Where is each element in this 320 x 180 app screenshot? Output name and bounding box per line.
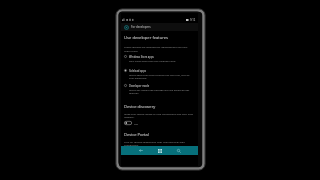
staticText: These settings are intended for developm… <box>124 45 196 48</box>
staticText: Device discovery <box>124 104 156 110</box>
button[interactable]: Search <box>169 146 188 155</box>
staticText: Off <box>134 122 138 125</box>
staticText: Use developer features <box>124 35 168 41</box>
button[interactable]: Start <box>150 146 169 155</box>
staticText: Install any signed app package and use a… <box>129 88 190 94</box>
staticText: For developers <box>131 25 151 29</box>
staticText: 9:12 <box>190 18 196 22</box>
staticText: Turn on remote diagnostics over USB and … <box>124 140 196 146</box>
button[interactable]: Developer mode <box>124 84 199 94</box>
staticText: Device Portal <box>124 132 149 138</box>
button[interactable]: Learn more <box>124 49 138 52</box>
staticText: Developer mode <box>129 84 150 88</box>
button[interactable]: Back <box>131 146 150 155</box>
button[interactable]: For developers <box>121 23 198 31</box>
button[interactable]: Sideload apps <box>124 69 199 79</box>
staticText: Make your device visible to USB connecti… <box>124 112 196 118</box>
button[interactable]: Off <box>124 121 138 125</box>
staticText: Windows Store apps <box>129 55 154 59</box>
staticText: Sideload apps <box>129 69 147 73</box>
staticText: Only install apps from the Windows Store… <box>129 59 176 62</box>
staticText: Install apps from other sources that you… <box>129 73 190 79</box>
button[interactable]: Windows Store apps <box>124 55 199 62</box>
